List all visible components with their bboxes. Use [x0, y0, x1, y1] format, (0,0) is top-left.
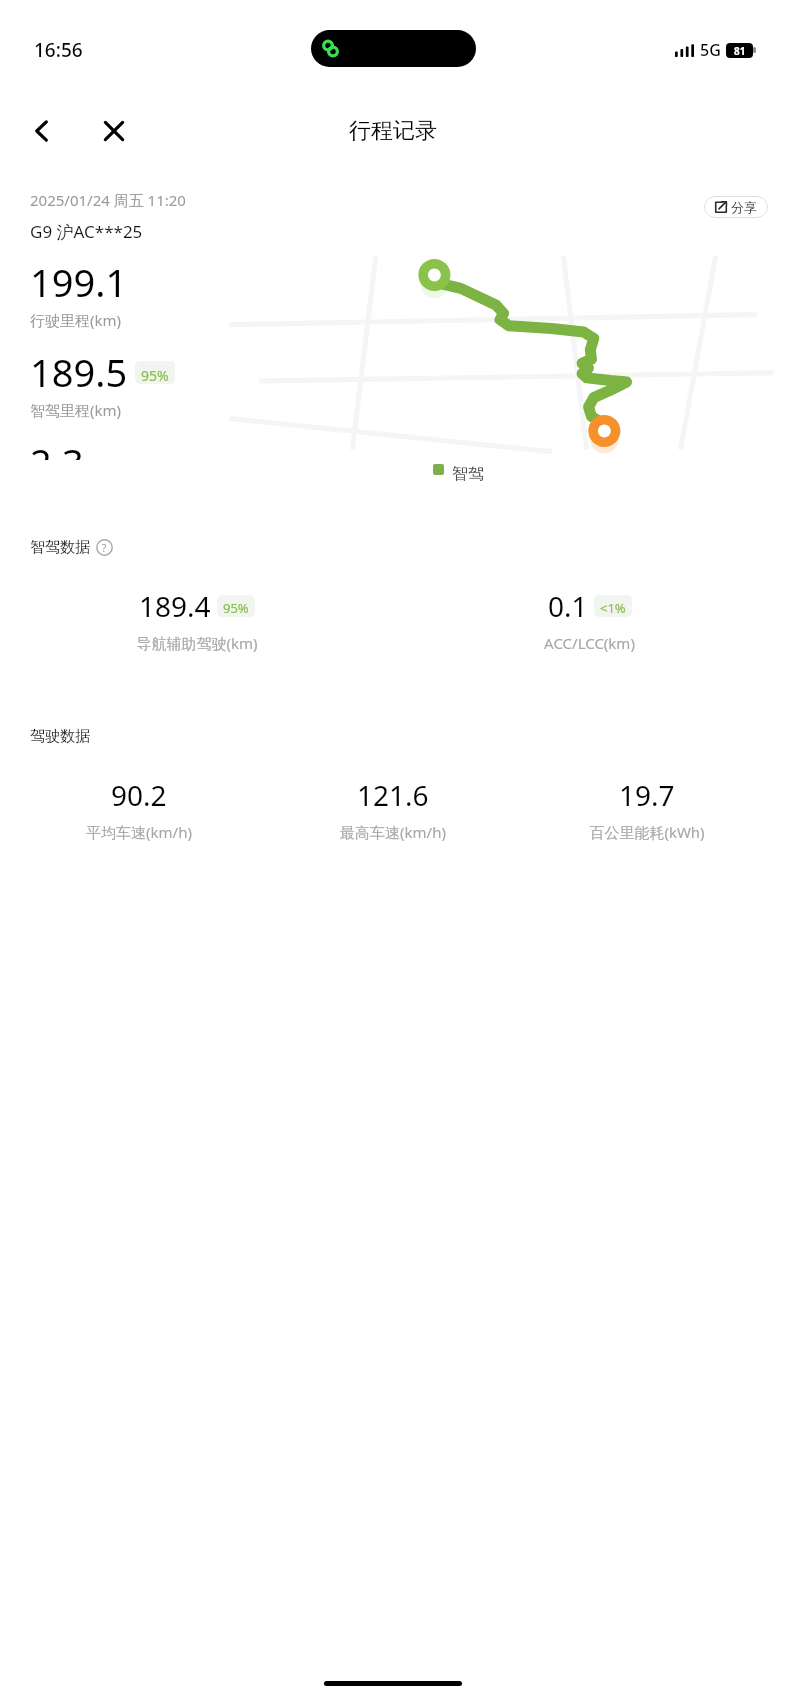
button[interactable]: Close	[90, 107, 138, 155]
staticText: 0.1	[548, 587, 588, 625]
staticText: ACC/LCC(km)	[544, 633, 635, 653]
staticText: 智驾里程(km)	[30, 400, 122, 420]
staticText: 百公里能耗(kWh)	[589, 822, 705, 842]
staticText: 2.3	[30, 436, 84, 460]
staticText: 95%	[141, 366, 169, 384]
staticText: 19.7	[619, 776, 675, 814]
staticText: 导航辅助驾驶(km)	[136, 633, 258, 653]
staticText: 最高车速(km/h)	[340, 822, 446, 842]
staticText: 驾驶数据	[30, 727, 90, 746]
button[interactable]: 分享	[704, 196, 768, 218]
staticText: 平均车速(km/h)	[86, 822, 192, 842]
staticText: G9 沪AC***25	[30, 220, 143, 243]
button[interactable]: Info	[96, 539, 113, 556]
staticText: 95%	[223, 599, 249, 617]
staticText: 行驶里程(km)	[30, 310, 122, 330]
staticText: ?	[102, 541, 107, 555]
staticText: <1%	[600, 599, 626, 617]
staticText: 智驾数据	[30, 538, 90, 557]
staticText: 分享	[731, 199, 757, 215]
staticText: 121.6	[357, 776, 429, 814]
staticText: 2025/01/24 周五 11:20	[30, 190, 186, 210]
button[interactable]: Back	[18, 107, 66, 155]
staticText: 189.5	[30, 346, 128, 398]
staticText: 智驾	[452, 464, 484, 484]
staticText: 189.4	[139, 587, 211, 625]
staticText: 199.1	[30, 256, 128, 308]
staticText: 16:56	[34, 37, 83, 63]
staticText: 81	[734, 44, 746, 58]
staticText: 行程记录	[349, 117, 437, 145]
staticText: 90.2	[111, 776, 167, 814]
staticText: 5G	[700, 39, 721, 61]
